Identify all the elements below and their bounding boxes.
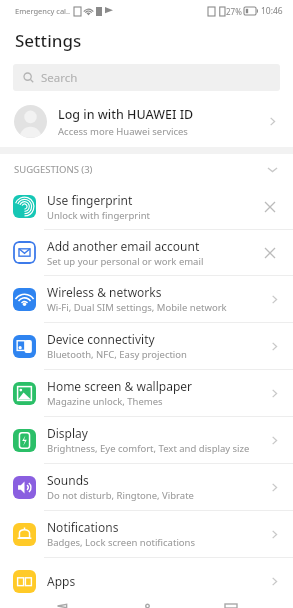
staticText: Magazine unlock, Themes — [47, 395, 163, 408]
button[interactable]: Display — [0, 417, 293, 463]
staticText: Search — [41, 70, 78, 86]
staticText: Settings — [15, 29, 82, 52]
button[interactable]: Notifications — [0, 511, 293, 557]
button[interactable]: Add another email account — [0, 230, 293, 275]
staticText: Bluetooth, NFC, Easy projection — [47, 348, 187, 361]
other: Collapse suggestions — [266, 163, 279, 176]
button[interactable]: Dismiss Add another email account — [259, 242, 281, 264]
staticText: Add another email account — [47, 238, 200, 254]
button[interactable]: Home — [125, 604, 169, 608]
staticText: Device connectivity — [47, 331, 155, 347]
button[interactable]: Wireless & networks — [0, 276, 293, 322]
button[interactable]: Use fingerprint — [0, 184, 293, 229]
staticText: Emergency cal.. — [15, 6, 71, 16]
staticText: Use fingerprint — [47, 192, 133, 208]
button[interactable]: Search — [13, 64, 280, 91]
staticText: Do not disturb, Ringtone, Vibrate — [47, 489, 194, 502]
button[interactable]: Dismiss Use fingerprint — [259, 196, 281, 218]
button[interactable]: Apps — [0, 558, 293, 604]
staticText: Sounds — [47, 472, 89, 488]
button[interactable]: Device connectivity — [0, 323, 293, 369]
button[interactable]: Home screen & wallpaper — [0, 370, 293, 416]
staticText: Set up your personal or work email — [47, 255, 204, 268]
staticText: Brightness, Eye comfort, Text and displa… — [47, 442, 250, 455]
staticText: Log in with HUAWEI ID — [58, 106, 194, 123]
staticText: 10:46 — [261, 5, 283, 17]
staticText: Unlock with fingerprint — [47, 209, 151, 222]
staticText: Wireless & networks — [47, 284, 162, 300]
staticText: Display — [47, 425, 88, 441]
staticText: Access more Huawei services — [58, 125, 188, 138]
staticText: SUGGESTIONS (3) — [14, 163, 266, 176]
button[interactable]: Log in with HUAWEI ID — [0, 96, 293, 147]
staticText: Badges, Lock screen notifications — [47, 536, 196, 549]
button[interactable]: Sounds — [0, 464, 293, 510]
button[interactable]: Back — [40, 604, 84, 608]
staticText: Notifications — [47, 519, 119, 535]
staticText: Wi-Fi, Dual SIM settings, Mobile network — [47, 301, 227, 314]
button[interactable]: SUGGESTIONS (3) — [0, 154, 293, 184]
button[interactable]: Recent apps — [209, 604, 253, 608]
staticText: Apps — [47, 573, 76, 589]
staticText: 27% — [226, 6, 242, 17]
staticText: Home screen & wallpaper — [47, 378, 193, 394]
